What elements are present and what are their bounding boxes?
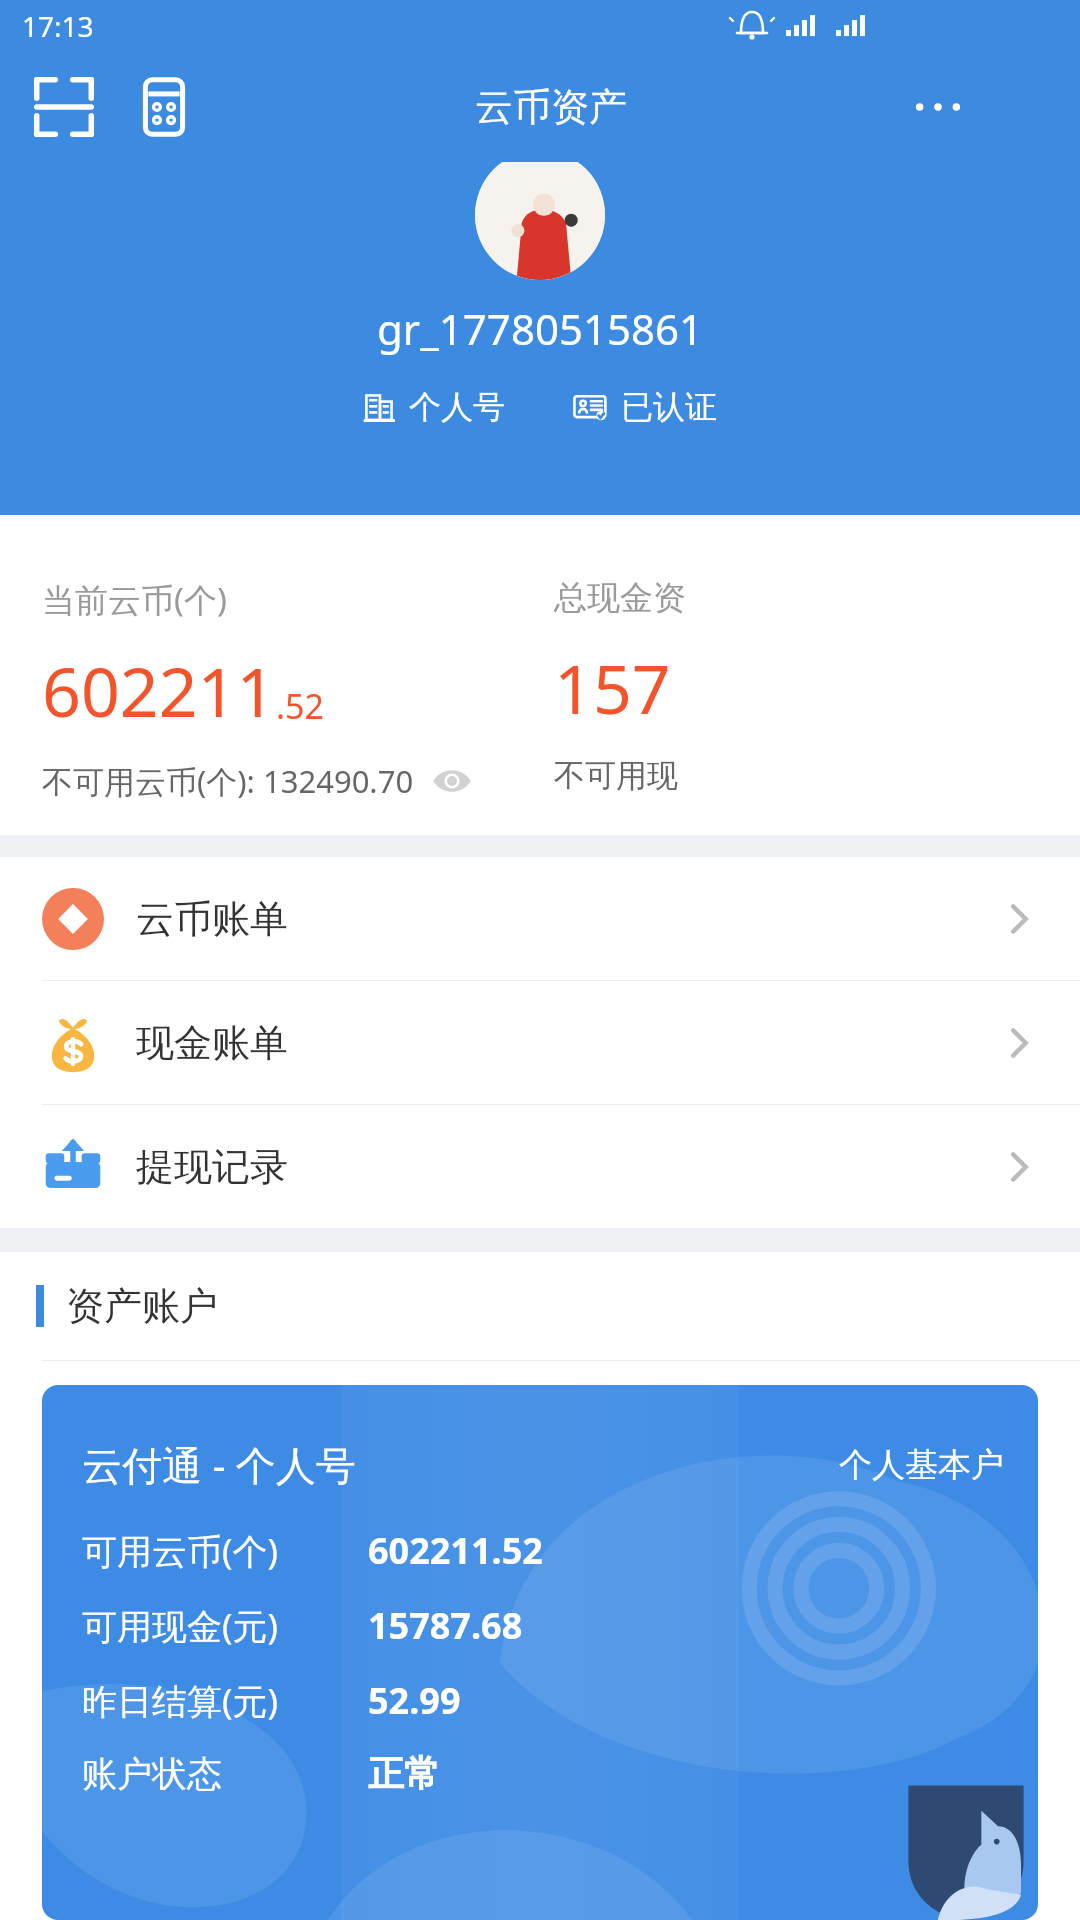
button[interactable]: 现金账单 <box>0 981 1080 1104</box>
staticText: 资产账户 <box>66 1282 218 1330</box>
staticText: 云币账单 <box>136 895 288 943</box>
staticText: 52.99 <box>368 1676 461 1725</box>
staticText: 个人号 <box>409 387 505 427</box>
button[interactable]: 已认证 <box>573 387 717 427</box>
staticText: 正常 <box>368 1751 440 1796</box>
staticText: gr_17780515861 <box>377 300 704 357</box>
staticText: 可用现金(元) <box>82 1602 279 1650</box>
button[interactable]: 个人号 <box>363 387 505 427</box>
staticText: 个人基本户 <box>839 1444 1004 1486</box>
staticText: 提现记录 <box>136 1143 288 1191</box>
button[interactable]: Calculator <box>128 71 200 143</box>
staticText: 已认证 <box>621 387 717 427</box>
staticText: 不可用现 <box>554 756 678 795</box>
staticText: 云币资产 <box>475 83 627 131</box>
button[interactable]: 提现记录 <box>0 1105 1080 1228</box>
button[interactable]: 云币账单 <box>0 857 1080 980</box>
staticText: 昨日结算(元) <box>82 1677 279 1725</box>
staticText: 账户状态 <box>82 1752 222 1796</box>
button[interactable]: Scan QR code <box>28 71 100 143</box>
staticText: .52 <box>276 683 325 729</box>
button[interactable]: Toggle balance visibility <box>430 759 474 803</box>
staticText: 17:13 <box>22 7 94 45</box>
staticText: 可用云币(个) <box>82 1527 279 1575</box>
staticText: 602211 <box>42 644 276 737</box>
staticText: 157 <box>554 641 671 734</box>
staticText: 云付通 - 个人号 <box>82 1437 356 1492</box>
staticText: 当前云币(个) <box>42 577 227 622</box>
staticText: 总现金资 <box>554 577 686 619</box>
button[interactable]: 云付通 - 个人号 <box>42 1385 1038 1920</box>
button[interactable]: More options <box>902 71 974 143</box>
staticText: 15787.68 <box>368 1601 523 1650</box>
staticText: 现金账单 <box>136 1019 288 1067</box>
staticText: 不可用云币(个): 132490.70 <box>42 760 414 802</box>
staticText: 602211.52 <box>368 1526 543 1575</box>
